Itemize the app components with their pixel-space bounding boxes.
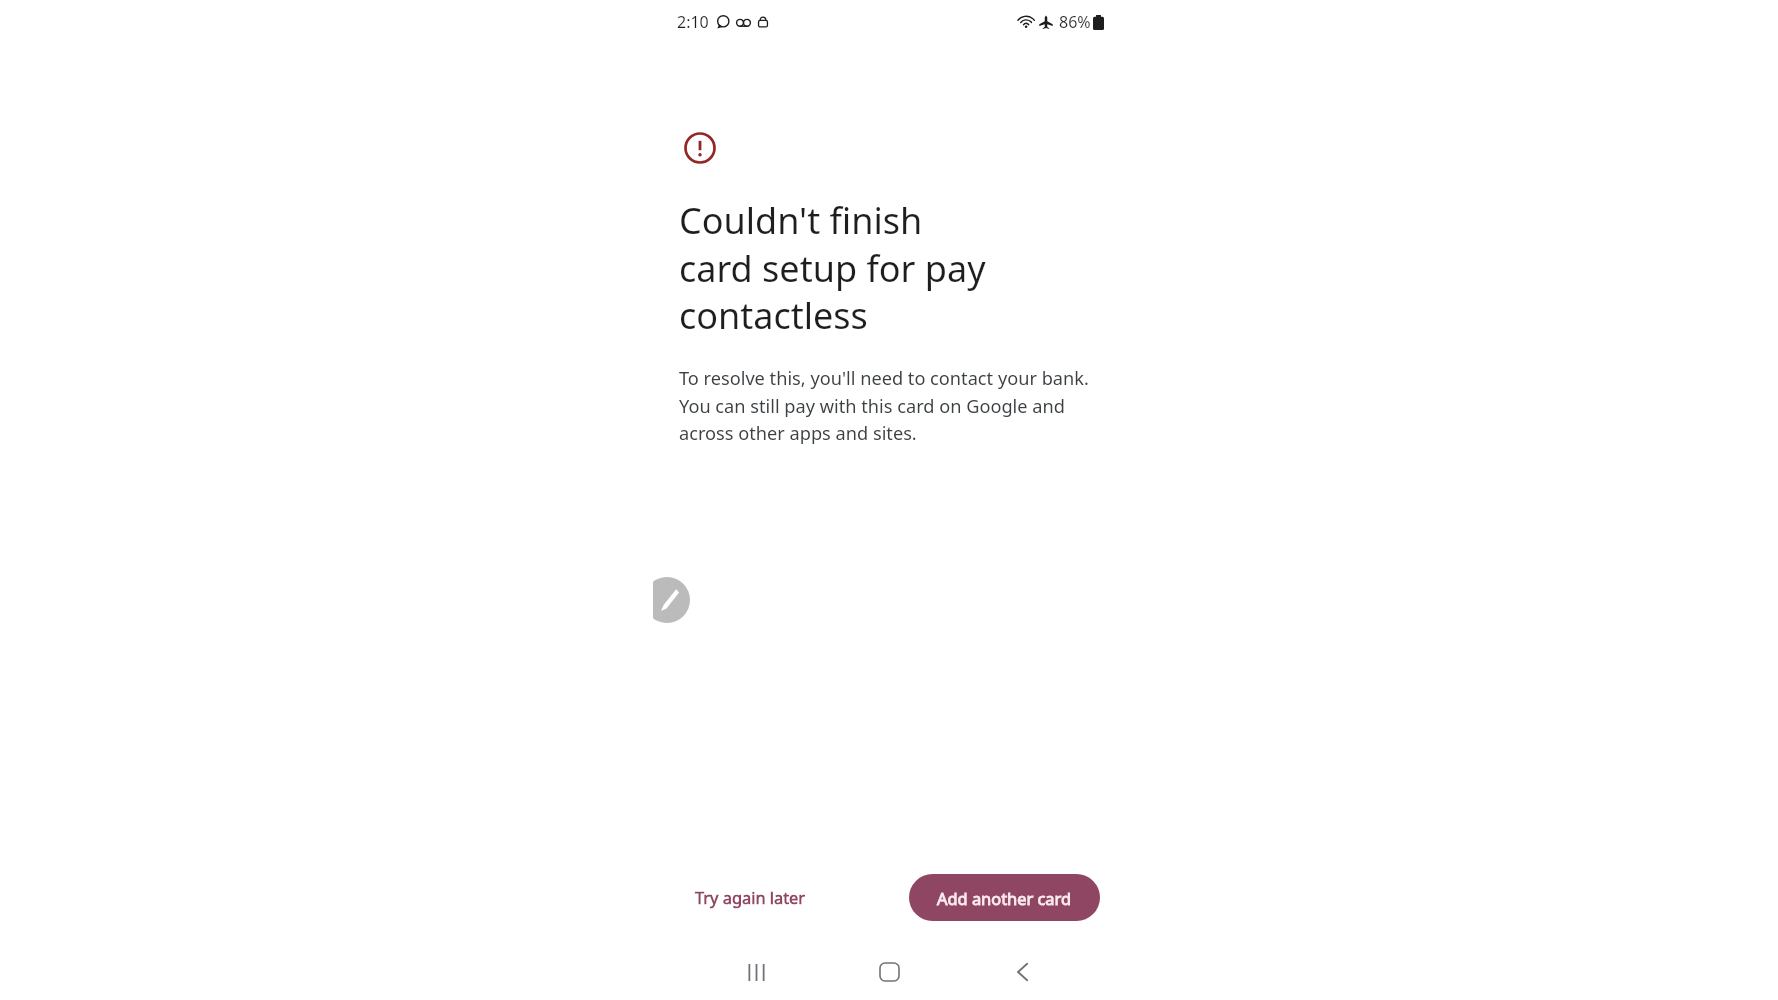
button[interactable]: Home [868, 951, 910, 993]
button[interactable]: Edit [653, 577, 690, 623]
staticText: Try again later [695, 886, 806, 908]
staticText: 86% [1059, 11, 1091, 33]
button[interactable]: Back [1001, 951, 1043, 993]
button[interactable]: Recent apps [735, 951, 777, 993]
staticText: To resolve this, you'll need to contact … [679, 366, 1109, 445]
staticText: 2:10 [677, 11, 709, 33]
staticText: Add another card [937, 887, 1072, 909]
button[interactable]: Try again later [671, 873, 830, 921]
button[interactable]: Add another card [909, 874, 1100, 921]
staticText: Couldn't finish card setup for pay conta… [679, 196, 986, 340]
